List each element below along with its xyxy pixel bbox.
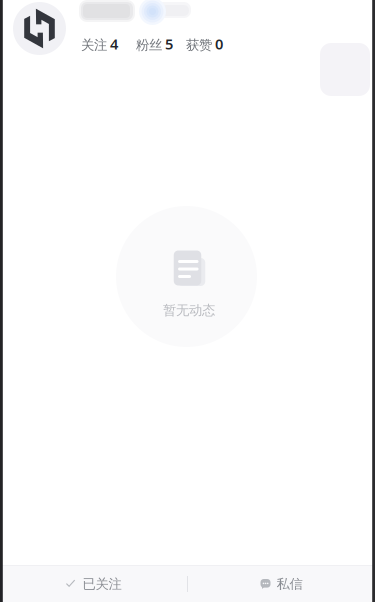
button[interactable]: Profile photo (13, 2, 66, 55)
button[interactable]: 私信 (188, 566, 375, 602)
staticText: 获赞 (186, 37, 212, 53)
staticText: 4 (110, 34, 118, 53)
staticText: 0 (215, 34, 223, 53)
button[interactable]: User name (81, 0, 189, 24)
staticText: 暂无动态 (163, 302, 215, 318)
button[interactable]: 关注 (81, 34, 118, 53)
button[interactable]: 粉丝 (136, 34, 173, 53)
button[interactable]: 已关注 (0, 566, 187, 602)
staticText: 关注 (81, 37, 107, 53)
button[interactable]: 获赞 (186, 34, 223, 53)
staticText: 已关注 (82, 576, 121, 592)
staticText: 粉丝 (136, 37, 162, 53)
staticText: 私信 (276, 576, 302, 592)
staticText: 5 (165, 34, 173, 53)
